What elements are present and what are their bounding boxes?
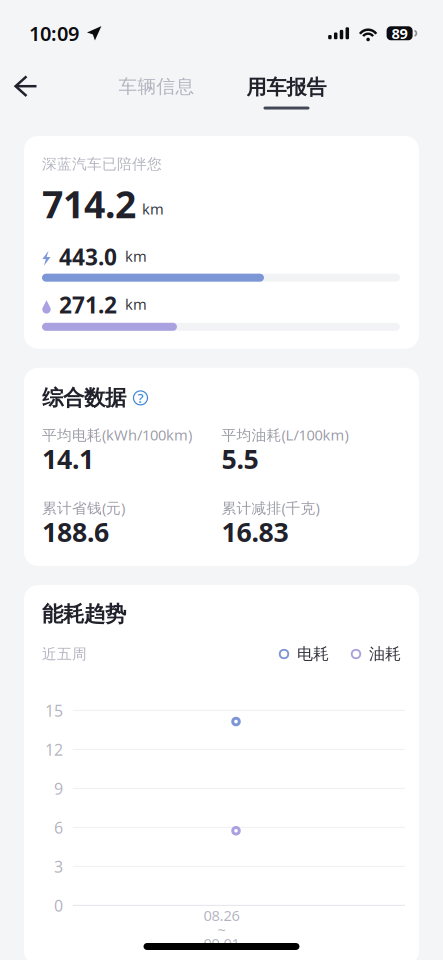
staticText: 188.6 [42, 514, 109, 549]
staticText: 89 [392, 23, 408, 43]
staticText: 15 [45, 700, 63, 721]
staticText: 3 [54, 856, 63, 877]
staticText: 443.0 [59, 242, 117, 272]
staticText: ~ [217, 920, 225, 939]
staticText: 10:09 [29, 20, 79, 47]
staticText: 车辆信息 [118, 75, 194, 98]
staticText: 深蓝汽车已陪伴您 [42, 155, 162, 173]
staticText: 14.1 [42, 441, 94, 476]
staticText: 5.5 [221, 441, 258, 476]
staticText: 平均油耗(L/100km) [221, 425, 348, 444]
staticText: 09.01 [203, 934, 239, 953]
staticText: km [125, 246, 147, 266]
staticText: km [125, 294, 147, 314]
staticText: 9 [54, 778, 63, 799]
staticText: ? [137, 389, 143, 407]
staticText: 能耗趋势 [42, 601, 126, 627]
button[interactable]: 用车报告 [242, 56, 330, 118]
button[interactable]: 车辆信息 [112, 56, 200, 118]
staticText: 16.83 [221, 514, 288, 549]
button[interactable]: Back [14, 56, 62, 118]
staticText: 用车报告 [246, 75, 326, 100]
staticText: km [142, 199, 164, 219]
staticText: 累计省钱(元) [42, 498, 125, 517]
staticText: 累计减排(千克) [221, 498, 319, 517]
staticText: 271.2 [59, 290, 117, 320]
staticText: 12 [45, 739, 63, 760]
staticText: 平均电耗(kWh/100km) [42, 425, 192, 444]
staticText: 近五周 [42, 645, 87, 663]
staticText: 油耗 [369, 644, 401, 664]
staticText: 714.2 [42, 179, 136, 229]
staticText: 08.26 [203, 906, 239, 925]
staticText: 0 [54, 895, 63, 916]
staticText: 电耗 [297, 644, 329, 664]
staticText: 6 [54, 817, 63, 838]
staticText: 综合数据 [42, 385, 126, 411]
